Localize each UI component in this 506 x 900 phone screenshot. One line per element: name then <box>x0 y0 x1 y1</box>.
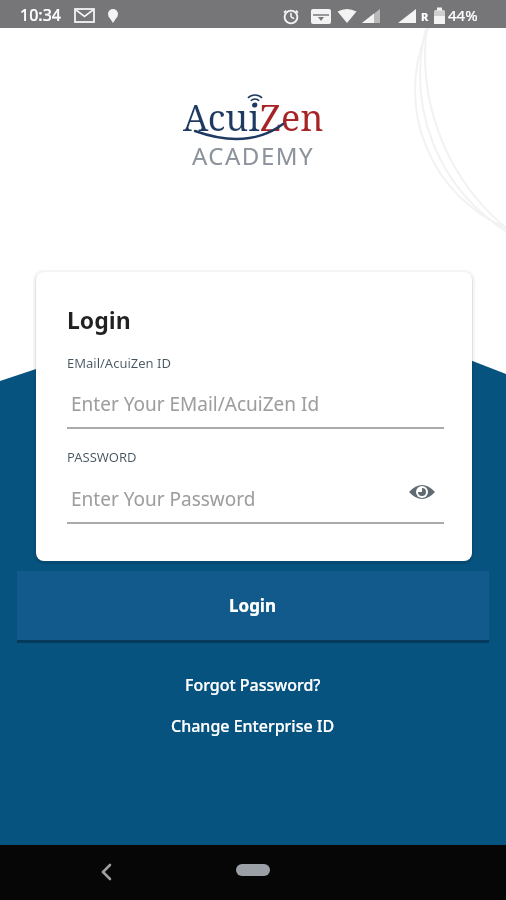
staticText: Enter Your Password <box>71 486 256 512</box>
staticText: Change Enterprise ID <box>171 715 335 737</box>
staticText: R <box>421 9 429 24</box>
staticText: Forgot Password? <box>185 674 321 696</box>
button[interactable] <box>236 864 270 876</box>
staticText: 10:34 <box>20 4 61 26</box>
button[interactable] <box>406 483 438 507</box>
button[interactable]: Enter Your Password <box>67 480 444 525</box>
staticText: Enter Your EMail/AcuiZen Id <box>71 391 320 417</box>
button[interactable]: Login <box>17 571 489 640</box>
staticText: EMail/AcuiZen ID <box>67 354 171 372</box>
staticText: Login <box>229 594 277 617</box>
staticText: AcuiZen <box>183 93 324 142</box>
staticText: 44% <box>448 5 478 25</box>
button[interactable]: Change Enterprise ID <box>171 715 335 737</box>
staticText: PASSWORD <box>67 448 137 466</box>
button[interactable] <box>96 859 120 885</box>
button[interactable]: Forgot Password? <box>185 674 321 696</box>
staticText: Login <box>67 304 131 335</box>
staticText: ACADEMY <box>192 139 315 172</box>
button[interactable]: Enter Your EMail/AcuiZen Id <box>67 385 444 430</box>
